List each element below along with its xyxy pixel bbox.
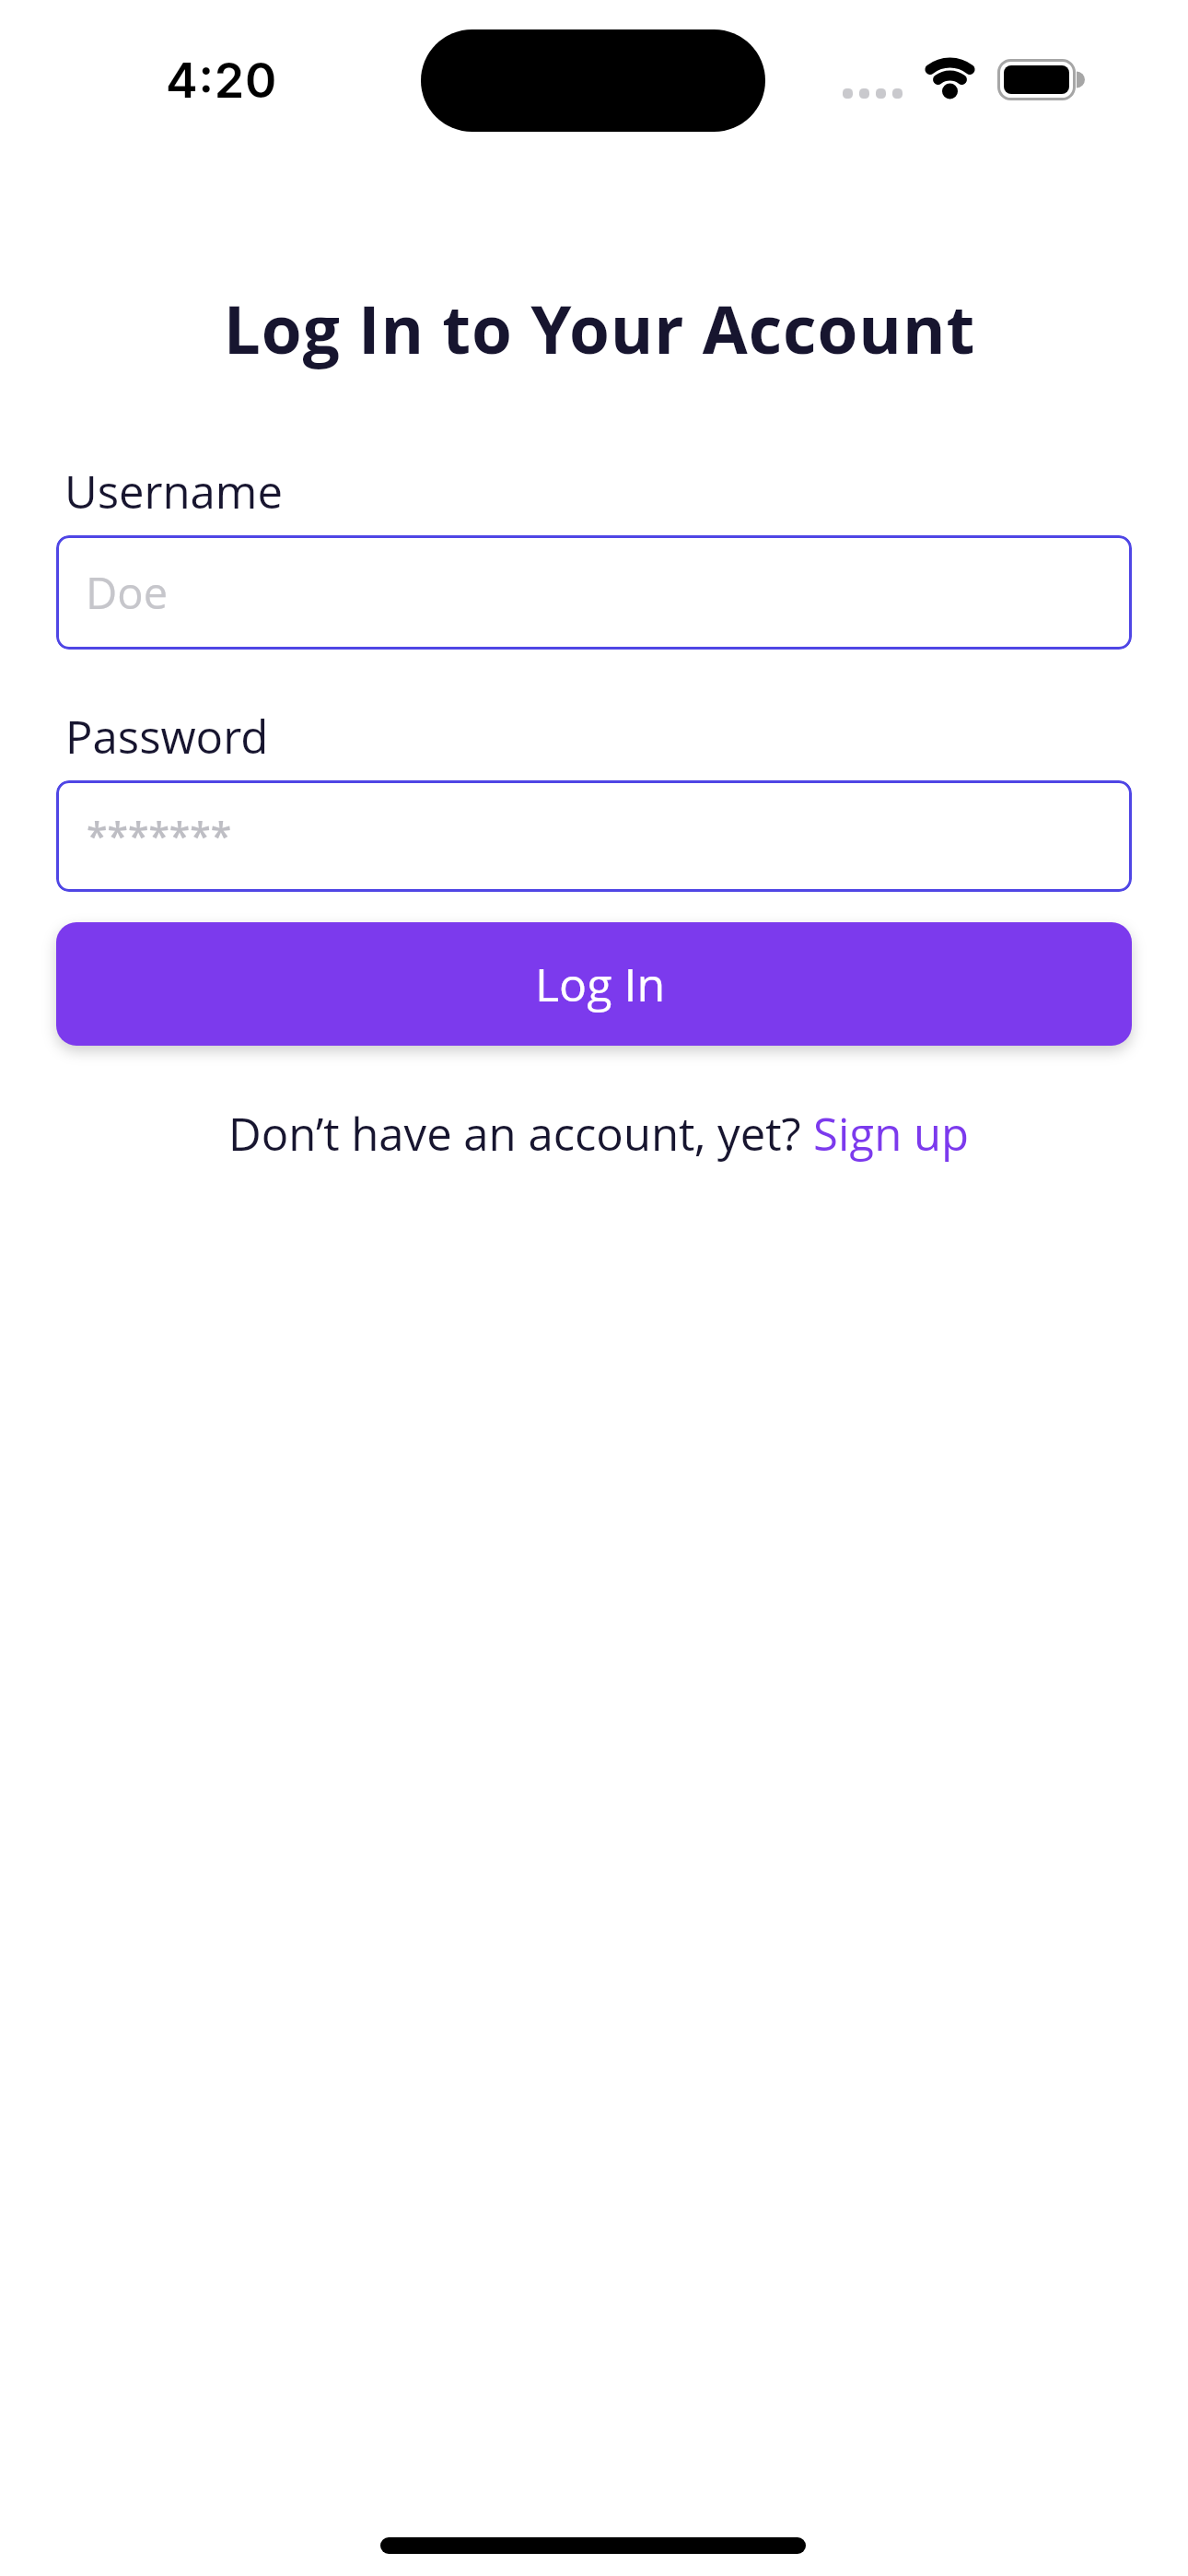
staticText: Log In bbox=[535, 953, 666, 1015]
staticText: Username bbox=[64, 461, 283, 522]
staticText: ******* bbox=[87, 810, 232, 861]
button[interactable]: Sign up bbox=[813, 1103, 970, 1165]
staticText: Password bbox=[65, 706, 269, 767]
button[interactable]: Log In bbox=[56, 922, 1132, 1046]
staticText: Don’t have an account, yet? bbox=[228, 1103, 813, 1165]
staticText: 4:20 bbox=[166, 52, 278, 110]
button[interactable]: ******* bbox=[56, 780, 1132, 892]
staticText: Log In to Your Account bbox=[6, 284, 1188, 373]
staticText: Doe bbox=[86, 563, 169, 622]
button[interactable]: Doe bbox=[56, 535, 1132, 650]
